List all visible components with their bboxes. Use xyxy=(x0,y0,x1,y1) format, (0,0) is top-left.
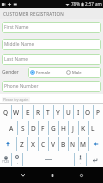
button[interactable]: P xyxy=(93,104,103,120)
button[interactable]: Shift xyxy=(0,136,16,152)
button[interactable]: Settings xyxy=(11,152,22,167)
button[interactable]: First Name xyxy=(2,22,101,33)
button[interactable]: B xyxy=(58,136,68,152)
button[interactable]: Voice input xyxy=(74,152,86,167)
staticText: U xyxy=(66,108,71,117)
staticText: J xyxy=(72,124,74,133)
button[interactable]: I xyxy=(73,104,83,120)
staticText: X xyxy=(31,140,35,149)
button[interactable]: A xyxy=(6,120,17,136)
button[interactable]: E xyxy=(22,104,33,120)
button[interactable]: Recents xyxy=(74,168,88,182)
staticText: G xyxy=(51,124,56,133)
button[interactable]: M xyxy=(78,136,88,152)
staticText: Female xyxy=(36,70,51,76)
staticText: V xyxy=(51,140,55,149)
button[interactable]: T xyxy=(43,104,53,120)
button[interactable]: Please try again xyxy=(2,97,30,102)
staticText: , xyxy=(17,159,18,164)
staticText: B xyxy=(61,140,66,149)
staticText: T xyxy=(46,108,50,117)
button[interactable]: Q xyxy=(0,104,11,120)
staticText: 78% xyxy=(71,1,80,7)
staticText: K xyxy=(81,124,86,133)
staticText: Y xyxy=(56,108,60,117)
button[interactable]: Home xyxy=(45,168,59,182)
button[interactable]: Y xyxy=(53,104,63,120)
button[interactable]: Phone Number xyxy=(2,81,101,92)
button[interactable]: L xyxy=(88,120,98,136)
staticText: O xyxy=(85,108,91,117)
staticText: Q xyxy=(3,108,9,117)
button[interactable]: Female xyxy=(28,67,64,78)
staticText: M xyxy=(80,140,86,149)
button[interactable]: C xyxy=(38,136,48,152)
button[interactable]: R xyxy=(33,104,43,120)
button[interactable]: H xyxy=(58,120,68,136)
staticText: R xyxy=(36,108,41,117)
staticText: Male xyxy=(72,70,82,76)
button[interactable]: J xyxy=(68,120,78,136)
staticText: 2:57 am xyxy=(85,1,102,7)
staticText: Phone Number xyxy=(4,83,39,90)
button[interactable]: U xyxy=(63,104,73,120)
staticText: ?123 xyxy=(2,160,9,164)
button[interactable]: Space xyxy=(22,152,74,167)
staticText: I xyxy=(77,108,80,117)
staticText: S xyxy=(21,124,25,133)
staticText: . xyxy=(80,160,81,165)
button[interactable]: W xyxy=(11,104,22,120)
staticText: L xyxy=(91,124,95,133)
staticText: Please try again xyxy=(3,97,29,102)
staticText: First Name xyxy=(4,24,29,31)
button[interactable]: K xyxy=(78,120,88,136)
staticText: Last Name xyxy=(4,56,29,63)
button[interactable]: Z xyxy=(16,136,27,152)
button[interactable]: Backspace xyxy=(88,136,103,152)
button[interactable]: CUSTOMER REGISTRATION xyxy=(0,8,103,19)
button[interactable]: Middle Name xyxy=(2,39,101,50)
staticText: E xyxy=(26,108,30,117)
button[interactable]: O xyxy=(83,104,93,120)
staticText: N xyxy=(70,140,76,149)
button[interactable]: Male xyxy=(64,67,101,78)
staticText: A xyxy=(9,124,14,133)
staticText: F xyxy=(41,124,45,133)
button[interactable]: Last Name xyxy=(2,54,101,65)
staticText: CUSTOMER REGISTRATION xyxy=(3,11,64,17)
button[interactable]: X xyxy=(27,136,38,152)
button[interactable]: S xyxy=(17,120,28,136)
staticText: W xyxy=(13,108,20,117)
button[interactable]: D xyxy=(28,120,38,136)
staticText: H xyxy=(61,124,66,133)
button[interactable]: F xyxy=(38,120,48,136)
staticText: D xyxy=(31,124,36,133)
button[interactable]: Enter xyxy=(86,152,103,167)
staticText: P xyxy=(96,108,100,117)
button[interactable]: Back xyxy=(16,168,30,182)
button[interactable]: V xyxy=(48,136,58,152)
staticText: Gender xyxy=(2,69,28,76)
button[interactable]: Symbols xyxy=(0,152,11,167)
staticText: C xyxy=(41,140,46,149)
button[interactable]: N xyxy=(68,136,78,152)
button[interactable]: G xyxy=(48,120,58,136)
staticText: Middle Name xyxy=(4,41,35,48)
staticText: Z xyxy=(20,140,24,149)
